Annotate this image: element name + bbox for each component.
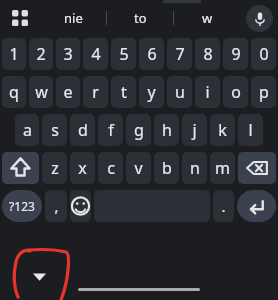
button[interactable]: n [182, 152, 207, 184]
staticText: i [205, 81, 210, 103]
button[interactable]: s [42, 114, 67, 146]
button[interactable]: nie [40, 0, 106, 36]
staticText: 7 [175, 43, 185, 65]
staticText: 4 [91, 43, 101, 65]
button[interactable]: k [210, 114, 235, 146]
button[interactable]: o [223, 76, 248, 108]
staticText: t [121, 81, 127, 103]
button[interactable]: to [107, 0, 173, 36]
button[interactable]: g [126, 114, 151, 146]
button[interactable]: r [83, 76, 108, 108]
button[interactable]: 6 [139, 38, 164, 70]
button[interactable]: j [182, 114, 207, 146]
button[interactable]: e [56, 76, 80, 108]
staticText: y [147, 81, 156, 103]
staticText: u [175, 81, 185, 103]
staticText: n [190, 157, 200, 179]
button[interactable]: Shift [2, 152, 39, 184]
button[interactable]: 0 [251, 38, 276, 70]
staticText: 1 [9, 43, 19, 65]
button[interactable]: p [251, 76, 276, 108]
staticText: nie [64, 9, 83, 27]
staticText: l [248, 119, 253, 141]
staticText: b [162, 157, 172, 179]
staticText: e [63, 81, 73, 103]
button[interactable]: Emoji [70, 190, 91, 222]
button[interactable]: c [98, 152, 123, 184]
staticText: j [192, 119, 197, 141]
button[interactable]: 3 [56, 38, 80, 70]
button[interactable]: i [195, 76, 220, 108]
button[interactable]: 5 [111, 38, 136, 70]
button[interactable]: 9 [223, 38, 248, 70]
button[interactable]: w [174, 0, 240, 36]
button[interactable]: l [238, 114, 263, 146]
button[interactable]: , [45, 190, 67, 222]
button[interactable]: f [98, 114, 123, 146]
button[interactable]: v [126, 152, 151, 184]
button[interactable]: u [167, 76, 192, 108]
button[interactable]: a [15, 114, 39, 146]
staticText: 5 [119, 43, 129, 65]
button[interactable]: d [70, 114, 95, 146]
button[interactable]: Voice input [240, 0, 278, 36]
staticText: x [78, 157, 87, 179]
button[interactable]: Toolbar [0, 0, 40, 36]
staticText: z [51, 157, 59, 179]
staticText: w [35, 81, 48, 103]
staticText: 8 [203, 43, 213, 65]
button[interactable]: ?123 [2, 190, 42, 222]
staticText: 3 [63, 43, 73, 65]
button[interactable]: w [29, 76, 53, 108]
staticText: 2 [36, 43, 46, 65]
staticText: to [134, 9, 147, 27]
button[interactable]: q [2, 76, 26, 108]
staticText: 0 [259, 43, 269, 65]
staticText: a [23, 119, 32, 141]
staticText: 9 [231, 43, 241, 65]
button[interactable]: Hide keyboard [26, 263, 52, 289]
button[interactable]: b [154, 152, 179, 184]
button[interactable]: x [70, 152, 95, 184]
staticText: g [134, 119, 144, 141]
staticText: , [54, 196, 59, 216]
staticText: . [221, 196, 226, 216]
staticText: ?123 [9, 198, 35, 214]
button[interactable]: y [139, 76, 164, 108]
staticText: s [51, 119, 59, 141]
staticText: h [162, 119, 172, 141]
button[interactable]: Backspace [238, 152, 276, 184]
staticText: w [202, 9, 213, 27]
button[interactable]: t [111, 76, 136, 108]
staticText: o [231, 81, 241, 103]
button[interactable]: 1 [2, 38, 26, 70]
button[interactable]: 8 [195, 38, 220, 70]
button[interactable]: m [210, 152, 235, 184]
staticText: p [259, 81, 269, 103]
button[interactable]: h [154, 114, 179, 146]
button[interactable]: . [213, 190, 234, 222]
staticText: 6 [147, 43, 157, 65]
staticText: q [9, 81, 19, 103]
staticText: f [108, 119, 114, 141]
button[interactable]: 7 [167, 38, 192, 70]
staticText: m [215, 157, 230, 179]
staticText: c [107, 157, 115, 179]
button[interactable]: 2 [29, 38, 53, 70]
button[interactable]: Enter [237, 190, 276, 222]
staticText: r [92, 81, 99, 103]
staticText: v [134, 157, 143, 179]
button[interactable]: 4 [83, 38, 108, 70]
staticText: k [218, 119, 227, 141]
button[interactable]: z [42, 152, 67, 184]
staticText: d [78, 119, 88, 141]
